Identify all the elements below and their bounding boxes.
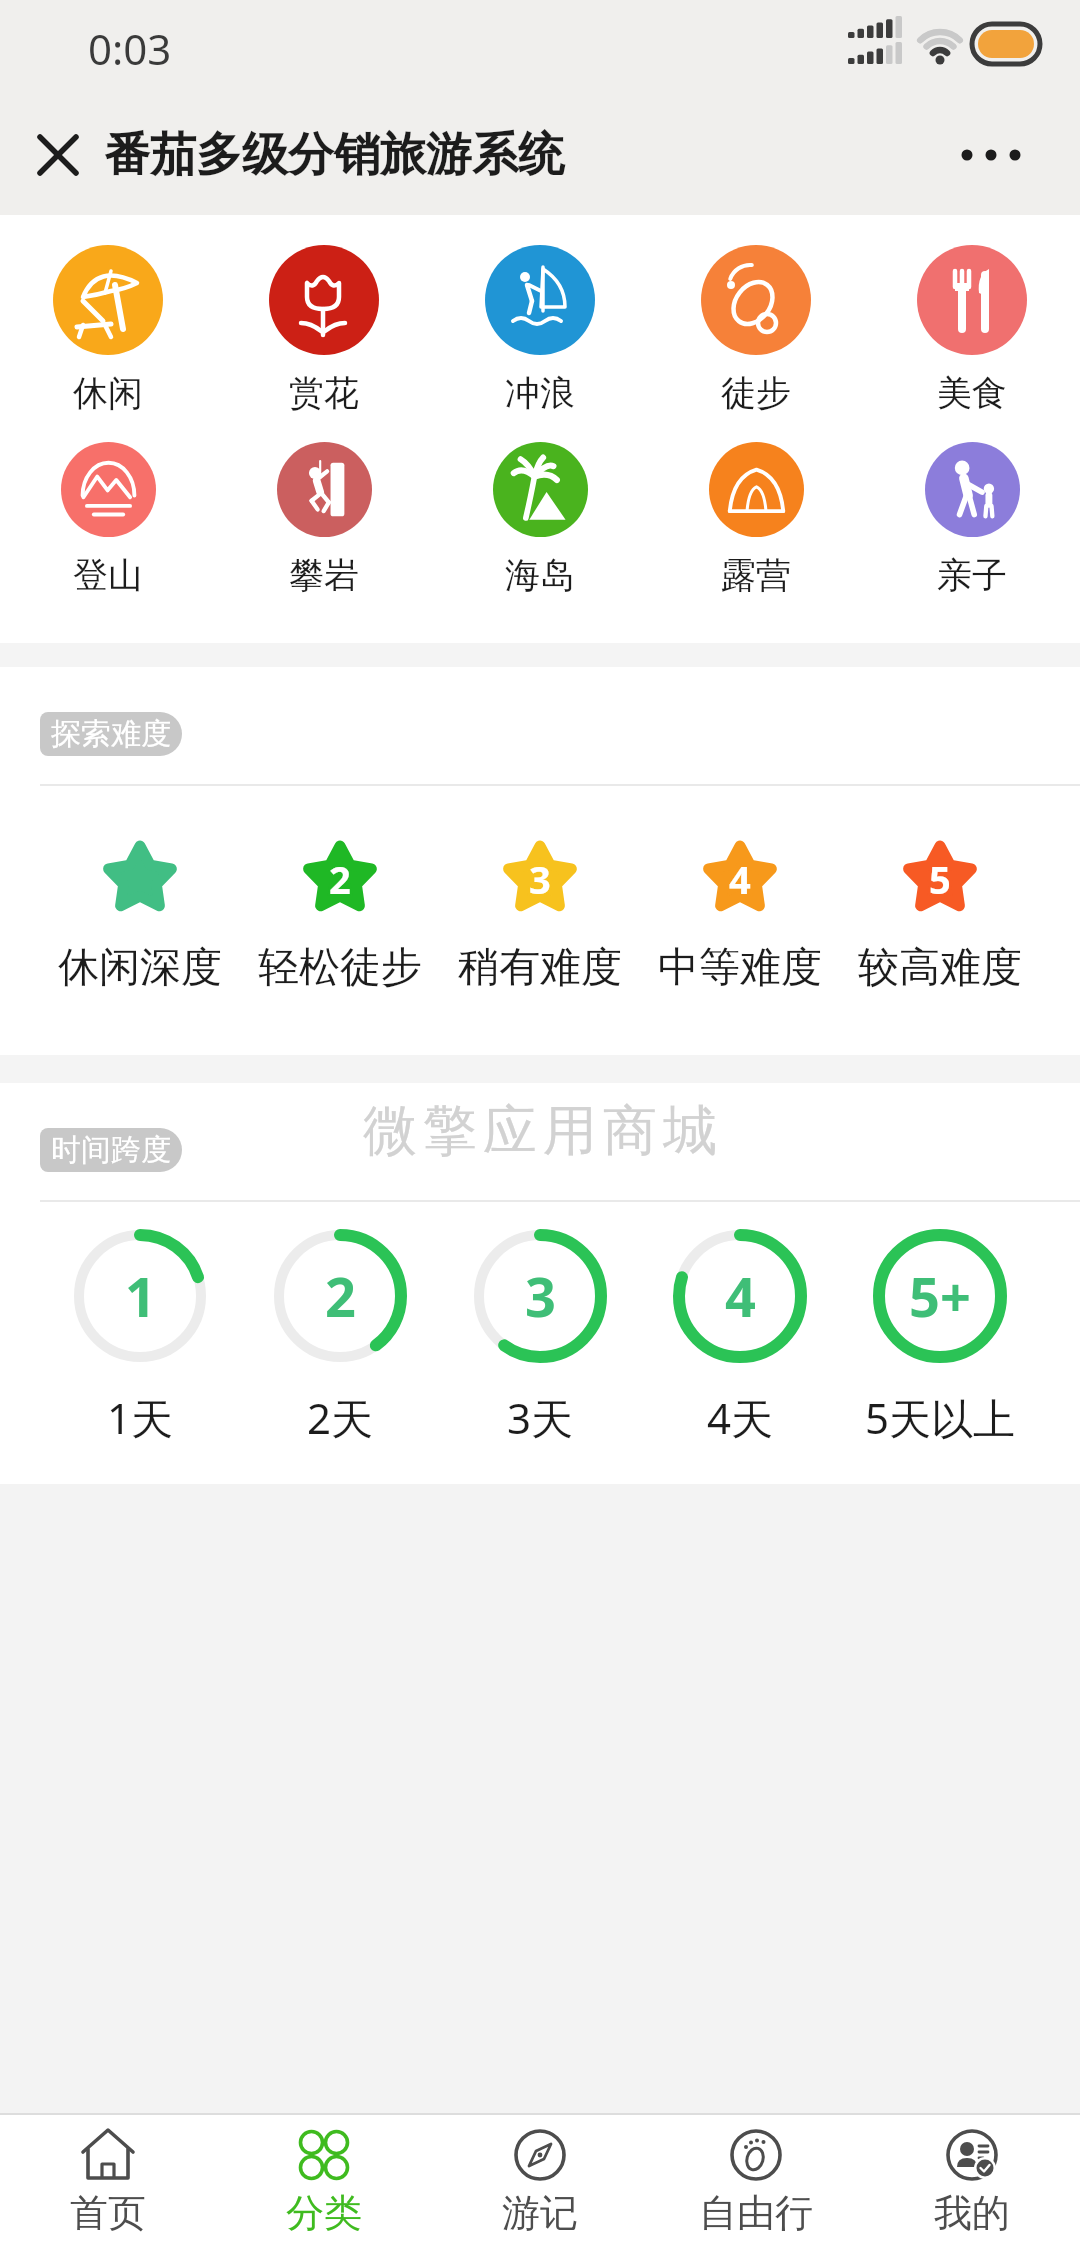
staticText: 1 bbox=[125, 1259, 156, 1333]
staticText: 3 bbox=[529, 853, 551, 905]
staticText: 中等难度 bbox=[658, 942, 822, 994]
button[interactable] bbox=[28, 125, 88, 185]
staticText: 游记 bbox=[502, 2189, 578, 2237]
staticText: 5 bbox=[929, 853, 951, 905]
staticText: 探索难度 bbox=[51, 715, 171, 753]
staticText: 徒步 bbox=[721, 371, 791, 415]
staticText: 3天 bbox=[507, 1389, 574, 1446]
staticText: 较高难度 bbox=[858, 942, 1022, 994]
staticText: 登山 bbox=[73, 553, 143, 597]
button[interactable]: 5+ bbox=[840, 1229, 1040, 1446]
staticText: 休闲深度 bbox=[58, 942, 222, 994]
staticText: 休闲 bbox=[73, 371, 143, 415]
staticText: 攀岩 bbox=[289, 553, 359, 597]
button[interactable]: 分类 bbox=[216, 2115, 432, 2237]
staticText: 2 bbox=[325, 1259, 356, 1333]
button[interactable]: 2 bbox=[240, 826, 440, 994]
staticText: 亲子 bbox=[937, 553, 1007, 597]
button[interactable]: 1 bbox=[40, 1229, 240, 1446]
staticText: 海岛 bbox=[505, 553, 575, 597]
button[interactable]: 休闲 bbox=[0, 245, 216, 415]
staticText: 稍有难度 bbox=[458, 942, 622, 994]
staticText: 赏花 bbox=[289, 371, 359, 415]
staticText: 首页 bbox=[70, 2189, 146, 2237]
button[interactable]: 首页 bbox=[0, 2115, 216, 2237]
button[interactable]: 2 bbox=[240, 1229, 440, 1446]
button[interactable] bbox=[955, 130, 1035, 180]
staticText: 4天 bbox=[707, 1389, 774, 1446]
button[interactable]: 徒步 bbox=[648, 245, 864, 415]
button[interactable]: 我的 bbox=[864, 2115, 1080, 2237]
staticText: 自由行 bbox=[699, 2189, 813, 2237]
button[interactable]: 3 bbox=[440, 826, 640, 994]
staticText: 露营 bbox=[721, 553, 791, 597]
staticText: 3 bbox=[525, 1259, 556, 1333]
staticText: 轻松徒步 bbox=[258, 942, 422, 994]
button[interactable]: 4 bbox=[640, 1229, 840, 1446]
staticText: 番茄多级分销旅游系统 bbox=[104, 126, 564, 184]
button[interactable]: 登山 bbox=[0, 442, 216, 597]
staticText: 5天以上 bbox=[865, 1389, 1016, 1446]
staticText: 4 bbox=[725, 1259, 756, 1333]
button[interactable]: 4 bbox=[640, 826, 840, 994]
staticText: 1天 bbox=[107, 1389, 174, 1446]
staticText: 4 bbox=[729, 853, 751, 905]
button[interactable]: 赏花 bbox=[216, 245, 432, 415]
staticText: 5+ bbox=[909, 1259, 971, 1333]
staticText: 2 bbox=[329, 853, 351, 905]
button[interactable]: 海岛 bbox=[432, 442, 648, 597]
button[interactable]: 休闲深度 bbox=[40, 826, 240, 994]
button[interactable]: 5 bbox=[840, 826, 1040, 994]
button[interactable]: 自由行 bbox=[648, 2115, 864, 2237]
button[interactable]: 美食 bbox=[864, 245, 1080, 415]
staticText: 分类 bbox=[286, 2189, 362, 2237]
button[interactable]: 游记 bbox=[432, 2115, 648, 2237]
button[interactable]: 冲浪 bbox=[432, 245, 648, 415]
button[interactable]: 攀岩 bbox=[216, 442, 432, 597]
staticText: 2天 bbox=[307, 1389, 374, 1446]
staticText: 时间跨度 bbox=[51, 1131, 171, 1169]
staticText: 冲浪 bbox=[505, 371, 575, 415]
button[interactable]: 露营 bbox=[648, 442, 864, 597]
staticText: 微擎应用商城 bbox=[360, 1097, 720, 1165]
staticText: 0:03 bbox=[88, 20, 172, 77]
button[interactable]: 3 bbox=[440, 1229, 640, 1446]
button[interactable]: 亲子 bbox=[864, 442, 1080, 597]
staticText: 我的 bbox=[934, 2189, 1010, 2237]
staticText: 美食 bbox=[937, 371, 1007, 415]
